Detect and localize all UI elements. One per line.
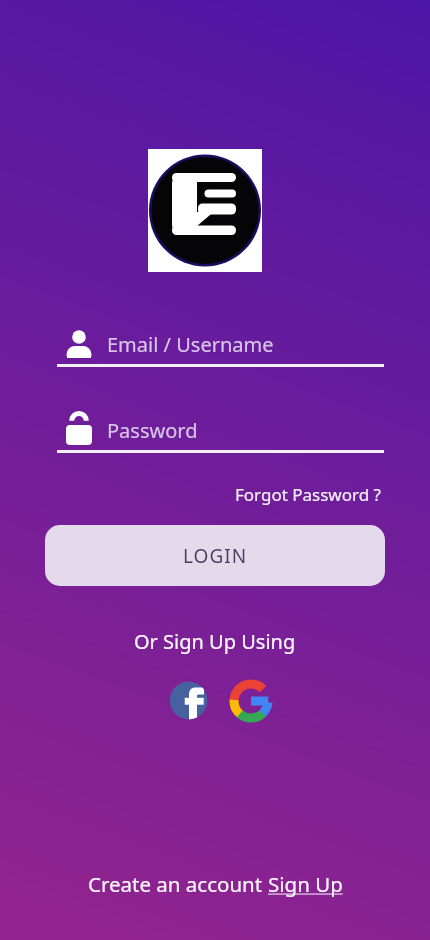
button[interactable]: Password (57, 411, 384, 453)
button[interactable]: Email / Username (57, 325, 384, 367)
button[interactable]: LOGIN (45, 525, 385, 586)
button[interactable] (169, 681, 209, 721)
staticText: LOGIN (183, 543, 248, 569)
button[interactable]: Forgot Password ? (235, 483, 381, 506)
button[interactable] (229, 679, 273, 723)
staticText: Create an account (88, 870, 268, 898)
staticText: Or Sign Up Using (134, 628, 296, 655)
staticText: Password (107, 417, 198, 444)
staticText: Email / Username (107, 331, 274, 358)
button[interactable]: Sign Up (268, 870, 343, 898)
